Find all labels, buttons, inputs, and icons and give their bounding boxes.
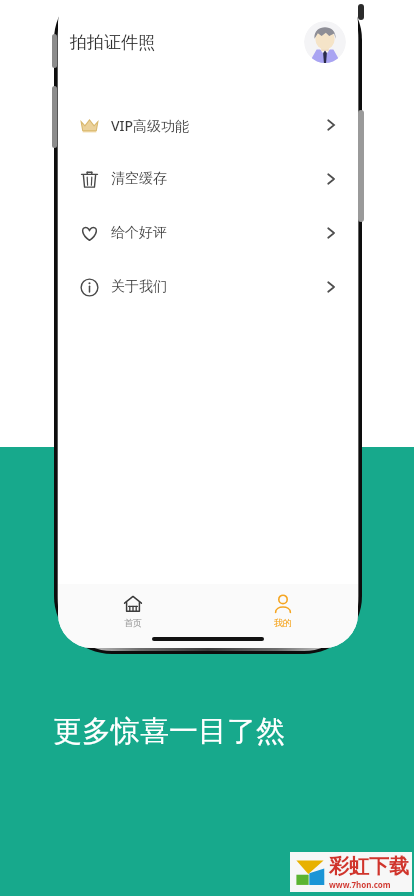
- staticText: 我的: [274, 617, 292, 628]
- button[interactable]: VIP高级功能: [58, 98, 358, 152]
- button[interactable]: User profile: [304, 21, 346, 63]
- button[interactable]: 我的: [208, 584, 358, 648]
- staticText: 首页: [124, 617, 142, 628]
- staticText: 彩虹下载: [329, 854, 409, 879]
- staticText: 拍拍证件照: [70, 32, 155, 53]
- staticText: 更多惊喜一目了然: [53, 713, 285, 750]
- staticText: 清空缓存: [111, 170, 167, 188]
- button[interactable]: 清空缓存: [58, 152, 358, 206]
- button[interactable]: 首页: [58, 584, 208, 648]
- button[interactable]: 给个好评: [58, 206, 358, 260]
- staticText: www.7hon.com: [329, 879, 391, 890]
- staticText: 关于我们: [111, 278, 167, 296]
- staticText: 给个好评: [111, 224, 167, 242]
- staticText: VIP高级功能: [111, 116, 190, 135]
- button[interactable]: 关于我们: [58, 260, 358, 314]
